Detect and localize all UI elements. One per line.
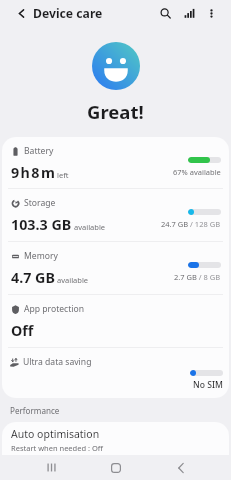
staticText: Device care <box>33 5 103 22</box>
staticText: App protection <box>24 303 85 315</box>
staticText: left <box>57 170 69 180</box>
button[interactable]: Auto optimisation <box>2 422 229 455</box>
button[interactable]: App protection <box>2 295 229 347</box>
staticText: Off <box>11 321 34 340</box>
button[interactable]: Ultra data saving <box>2 348 229 398</box>
staticText: 9 h 8 m <box>11 163 55 182</box>
staticText: 4.7 GB <box>11 268 55 287</box>
button[interactable]: More options <box>200 2 223 25</box>
staticText: Performance <box>10 405 60 416</box>
button[interactable]: Network usage <box>177 2 200 25</box>
staticText: 103.3 GB <box>11 215 72 234</box>
staticText: Battery <box>24 145 54 157</box>
staticText: Restart when needed : Off <box>11 443 103 453</box>
button[interactable]: Home <box>105 457 126 478</box>
staticText: 67% available <box>173 167 221 177</box>
button[interactable]: Back <box>170 457 191 478</box>
button[interactable]: Recent apps <box>41 457 62 478</box>
staticText: available <box>57 275 89 285</box>
staticText: 2.7 GB / 8 GB <box>174 272 221 282</box>
button[interactable]: Battery <box>2 137 229 188</box>
staticText: 24.7 GB / 128 GB <box>161 219 221 229</box>
staticText: Ultra data saving <box>23 356 92 368</box>
staticText: Memory <box>24 250 58 262</box>
button[interactable]: Memory <box>2 242 229 294</box>
staticText: Auto optimisation <box>11 427 100 441</box>
staticText: Storage <box>24 197 56 209</box>
staticText: Great! <box>87 99 144 124</box>
button[interactable]: Search <box>154 2 177 25</box>
button[interactable]: Storage <box>2 189 229 241</box>
staticText: No SIM <box>193 379 223 391</box>
staticText: available <box>74 222 106 232</box>
button[interactable]: Navigate up <box>12 4 31 23</box>
